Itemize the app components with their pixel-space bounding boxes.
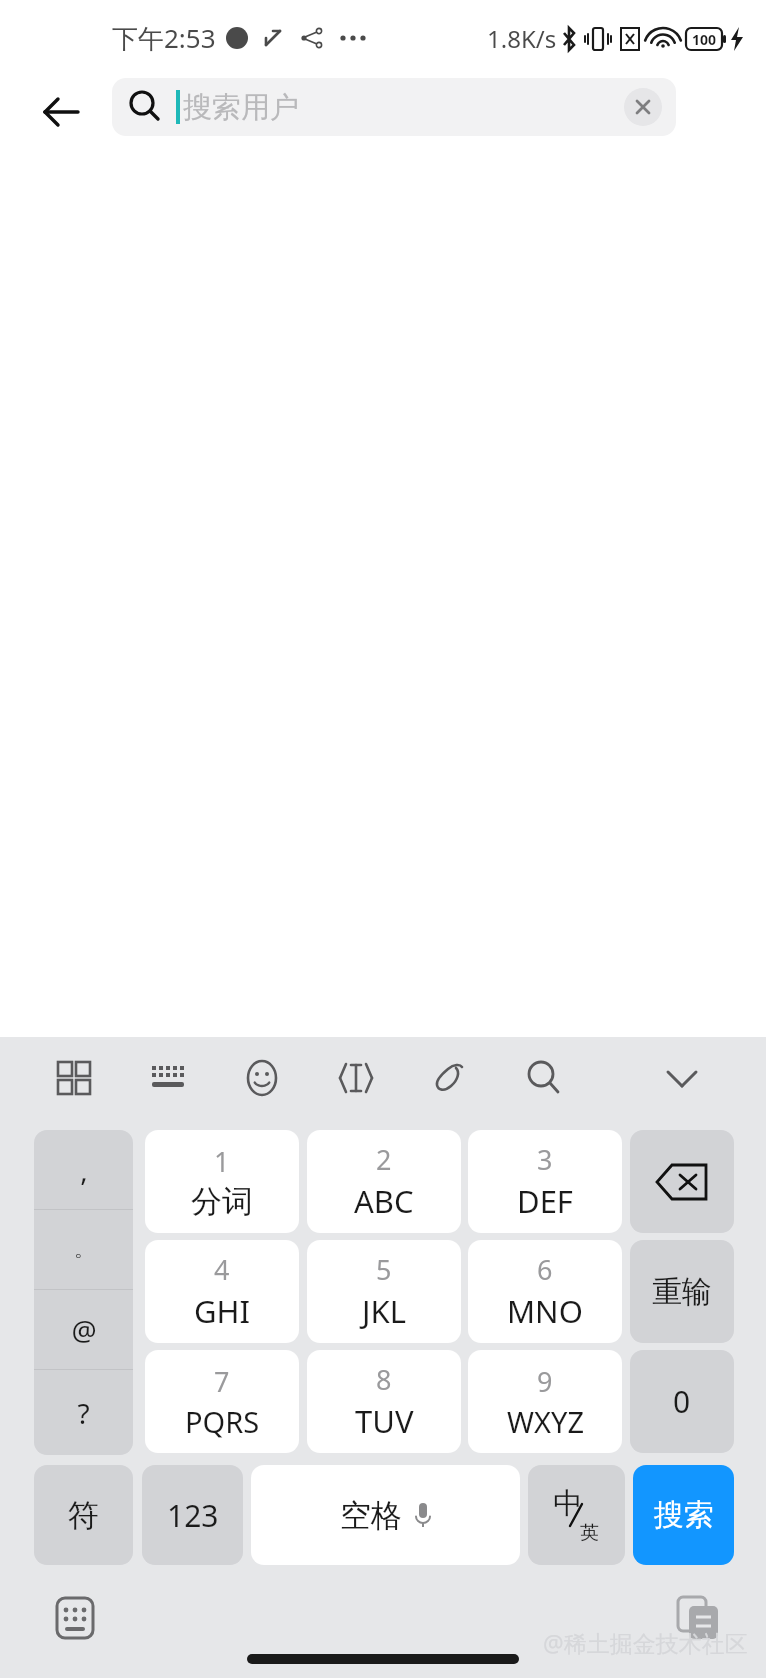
button[interactable]: Clipboard history — [666, 1585, 732, 1651]
button[interactable]: Emoji — [234, 1050, 290, 1106]
staticText: 6 — [537, 1251, 553, 1288]
staticText: 分词 — [191, 1182, 253, 1221]
button[interactable]: 4 — [145, 1240, 299, 1343]
staticText: 搜索用户 — [183, 89, 299, 126]
staticText: ? — [77, 1394, 90, 1432]
staticText: ABC — [354, 1180, 414, 1222]
button[interactable]: @ — [34, 1290, 133, 1369]
button[interactable]: Back — [28, 78, 96, 146]
button[interactable]: Search — [516, 1050, 572, 1106]
staticText: 重输 — [652, 1273, 712, 1311]
button[interactable]: Text edit — [328, 1050, 384, 1106]
button[interactable]: , — [34, 1130, 133, 1209]
staticText: , — [80, 1151, 88, 1189]
staticText: 英 — [580, 1521, 599, 1545]
button[interactable]: 9 — [468, 1350, 622, 1453]
button[interactable]: 6 — [468, 1240, 622, 1343]
staticText: 7 — [214, 1363, 230, 1400]
button[interactable]: 123 — [142, 1465, 243, 1565]
button[interactable]: 7 — [145, 1350, 299, 1453]
button[interactable]: Clipboard — [422, 1050, 478, 1106]
button[interactable]: Hide keyboard — [654, 1050, 710, 1106]
button[interactable]: 符 — [34, 1465, 133, 1565]
staticText: 2 — [376, 1141, 392, 1178]
staticText: 下午2:53 — [112, 20, 216, 56]
staticText: 1.8K/s — [487, 22, 557, 55]
staticText: @ — [71, 1311, 97, 1349]
staticText: 5 — [376, 1251, 392, 1288]
staticText: @稀土掘金技术社区 — [543, 1627, 748, 1658]
staticText: 4 — [214, 1251, 230, 1288]
button[interactable]: 8 — [307, 1350, 461, 1453]
staticText: 0 — [673, 1381, 691, 1422]
staticText: GHI — [194, 1290, 251, 1332]
staticText: 100 — [692, 30, 717, 49]
staticText: 。 — [74, 1237, 94, 1262]
button[interactable]: Keyboard layout — [140, 1050, 196, 1106]
button[interactable]: Panels — [46, 1050, 102, 1106]
button[interactable]: Clear — [624, 88, 662, 126]
staticText: 8 — [376, 1361, 392, 1398]
button[interactable]: Switch Chinese English — [528, 1465, 625, 1565]
staticText: 9 — [537, 1363, 553, 1400]
button[interactable]: 空格 — [251, 1465, 520, 1565]
staticText: 符 — [68, 1496, 99, 1535]
staticText: DEF — [517, 1180, 573, 1222]
staticText: PQRS — [185, 1402, 260, 1441]
staticText: 1 — [214, 1143, 230, 1180]
button[interactable]: 0 — [630, 1350, 734, 1453]
button[interactable]: 搜索用户 — [112, 78, 676, 136]
button[interactable]: 。 — [34, 1210, 133, 1289]
staticText: 123 — [167, 1495, 219, 1536]
button[interactable]: 2 — [307, 1130, 461, 1233]
staticText: TUV — [355, 1400, 414, 1442]
button[interactable]: 3 — [468, 1130, 622, 1233]
button[interactable]: Delete — [630, 1130, 734, 1233]
staticText: 搜索 — [654, 1496, 714, 1534]
staticText: MNO — [507, 1290, 583, 1332]
staticText: 中 — [553, 1485, 582, 1522]
button[interactable]: 1 — [145, 1130, 299, 1233]
button[interactable]: Keyboard switch — [42, 1585, 108, 1651]
button[interactable]: 重输 — [630, 1240, 734, 1343]
staticText: WXYZ — [507, 1402, 584, 1441]
button[interactable]: 5 — [307, 1240, 461, 1343]
staticText: 空格 — [340, 1496, 402, 1535]
staticText: 3 — [537, 1141, 553, 1178]
button[interactable]: ? — [34, 1370, 133, 1455]
button[interactable]: 搜索 — [633, 1465, 734, 1565]
staticText: JKL — [362, 1290, 406, 1332]
